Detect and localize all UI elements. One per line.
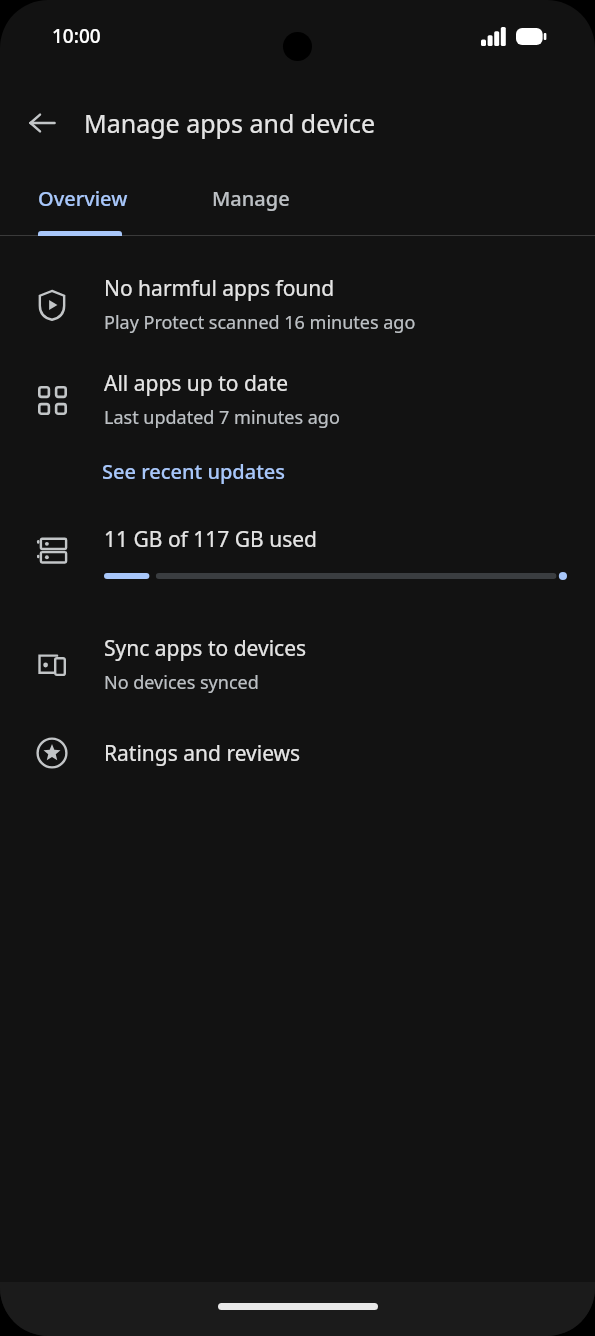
- staticText: Overview: [38, 185, 128, 212]
- staticText: Last updated 7 minutes ago: [104, 405, 340, 430]
- staticText: Manage apps and device: [84, 106, 375, 140]
- button[interactable]: No harmful apps found: [0, 268, 595, 341]
- staticText: Manage: [212, 185, 290, 212]
- staticText: See recent updates: [102, 458, 286, 485]
- staticText: 11 GB of 117 GB used: [104, 525, 317, 554]
- button[interactable]: All apps up to date: [0, 363, 595, 436]
- button[interactable]: Overview: [0, 168, 162, 236]
- button[interactable]: Back: [18, 99, 66, 147]
- staticText: No harmful apps found: [104, 274, 335, 303]
- staticText: Play Protect scanned 16 minutes ago: [104, 310, 416, 335]
- staticText: Ratings and reviews: [104, 739, 301, 768]
- button[interactable]: Ratings and reviews: [0, 723, 595, 783]
- staticText: 10:00: [52, 23, 101, 49]
- button[interactable]: Manage: [162, 168, 324, 236]
- staticText: All apps up to date: [104, 369, 289, 398]
- staticText: No devices synced: [104, 670, 259, 695]
- staticText: Sync apps to devices: [104, 634, 307, 663]
- button[interactable]: Sync apps to devices: [0, 628, 595, 701]
- button[interactable]: See recent updates: [84, 452, 304, 491]
- button[interactable]: 11 GB of 117 GB used: [0, 517, 595, 590]
